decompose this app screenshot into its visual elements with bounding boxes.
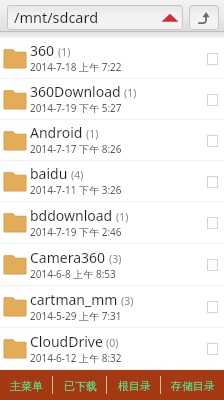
staticText: (1) — [58, 45, 71, 59]
staticText: 已下载 — [64, 379, 97, 393]
staticText: baidu — [30, 164, 68, 183]
button[interactable]: Select 360Download — [200, 79, 224, 119]
staticText: (4) — [71, 168, 84, 182]
button[interactable]: 360Download — [0, 79, 224, 120]
button[interactable]: Select baidu — [200, 161, 224, 201]
staticText: Android — [30, 123, 83, 142]
staticText: 主菜单 — [10, 379, 43, 393]
button[interactable]: Go up one level — [189, 5, 219, 30]
button[interactable]: Select 360 — [200, 38, 224, 78]
button[interactable]: 存储目录 — [161, 370, 224, 400]
staticText: 2014-7-19 下午 2:46 — [30, 225, 122, 239]
staticText: 2014-5-29 上午 7:31 — [30, 309, 122, 323]
button[interactable]: Select Android — [200, 120, 224, 160]
staticText: (1) — [116, 210, 129, 224]
staticText: 360Download — [30, 82, 121, 101]
staticText: (0) — [106, 336, 119, 350]
button[interactable]: 主菜单 — [0, 370, 53, 400]
staticText: 360 — [30, 41, 55, 60]
button[interactable]: Select bddownload — [200, 202, 224, 243]
staticText: 2014-7-17 下午 8:26 — [30, 142, 122, 156]
button[interactable]: 360 — [0, 38, 224, 79]
button[interactable]: 根目录 — [107, 370, 161, 400]
button[interactable]: cartman_mm — [0, 286, 224, 328]
staticText: (3) — [109, 252, 122, 266]
button[interactable]: Select CloudDrive — [200, 328, 224, 369]
staticText: Camera360 — [30, 248, 106, 267]
staticText: (3) — [121, 294, 134, 308]
staticText: bddownload — [30, 206, 113, 225]
staticText: 根目录 — [118, 379, 151, 393]
staticText: 2014-6-8 上午 8:53 — [30, 267, 116, 281]
staticText: cartman_mm — [30, 290, 118, 309]
button[interactable]: bddownload — [0, 202, 224, 244]
button[interactable]: Android — [0, 120, 224, 161]
staticText: CloudDrive — [30, 332, 103, 351]
staticText: 存储目录 — [171, 379, 215, 393]
staticText: 2014-7-19 下午 5:27 — [30, 101, 122, 115]
button[interactable]: Select Camera360 — [200, 244, 224, 285]
button[interactable]: /mnt/sdcard — [7, 5, 183, 30]
button[interactable]: Select cartman_mm — [200, 286, 224, 327]
staticText: /mnt/sdcard — [14, 7, 99, 27]
button[interactable]: Camera360 — [0, 244, 224, 286]
button[interactable]: 已下载 — [53, 370, 107, 400]
button[interactable]: CloudDrive — [0, 328, 224, 370]
button[interactable]: baidu — [0, 161, 224, 202]
staticText: 2014-6-12 上午 8:32 — [30, 351, 122, 365]
staticText: (1) — [124, 86, 137, 100]
staticText: (1) — [86, 127, 99, 141]
staticText: 2014-7-11 下午 3:26 — [30, 183, 122, 197]
staticText: 2014-7-18 上午 7:22 — [30, 60, 122, 74]
